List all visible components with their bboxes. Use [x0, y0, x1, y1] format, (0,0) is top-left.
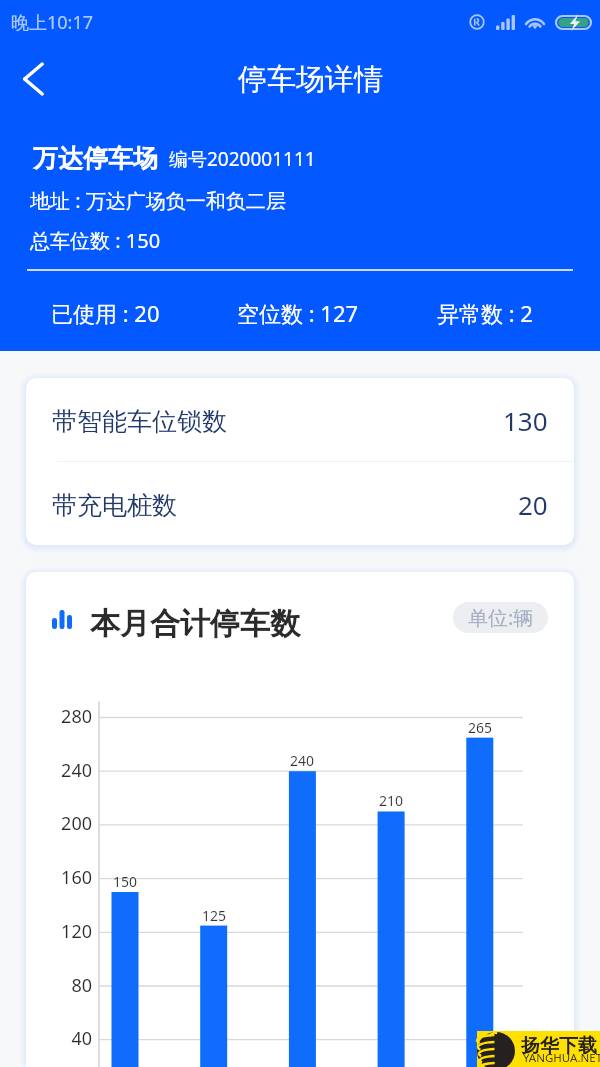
staticText: 带智能车位锁数: [52, 406, 227, 437]
button[interactable]: Back: [4, 50, 62, 108]
button[interactable]: 异常数 : 2: [395, 297, 575, 329]
staticText: 已使用 : 20: [51, 298, 160, 328]
staticText: 40: [50, 1026, 92, 1051]
staticText: 20: [518, 487, 548, 522]
staticText: 单位:辆: [468, 604, 534, 631]
staticText: 210: [361, 791, 421, 810]
staticText: 异常数 : 2: [437, 298, 533, 328]
staticText: 200: [50, 811, 92, 836]
button[interactable]: 带智能车位锁数: [26, 378, 574, 461]
button[interactable]: 已使用 : 20: [15, 297, 195, 329]
button[interactable]: 空位数 : 127: [208, 297, 388, 329]
staticText: 带充电桩数: [52, 490, 177, 521]
staticText: 地址 : 万达广场负一和负二层: [30, 187, 286, 214]
staticText: 编号2020001111: [169, 146, 316, 172]
staticText: 160: [50, 865, 92, 890]
staticText: 空位数 : 127: [237, 298, 359, 328]
staticText: 总车位数 : 150: [30, 227, 161, 254]
staticText: 280: [50, 704, 92, 729]
staticText: YANGHUA.NET: [523, 1050, 600, 1066]
staticText: 130: [503, 403, 548, 438]
staticText: 扬华下载: [521, 1034, 597, 1058]
staticText: 80: [50, 973, 92, 998]
staticText: 150: [95, 872, 155, 891]
button[interactable]: 带充电桩数: [26, 462, 574, 545]
staticText: 265: [450, 718, 510, 737]
staticText: 125: [184, 906, 244, 925]
staticText: 本月合计停车数: [90, 605, 300, 643]
staticText: 晚上10:17: [11, 10, 94, 35]
staticText: 240: [272, 751, 332, 770]
staticText: 240: [50, 758, 92, 783]
staticText: 停车场详情: [238, 61, 383, 98]
staticText: 120: [50, 919, 92, 944]
staticText: 万达停车场: [33, 143, 158, 174]
